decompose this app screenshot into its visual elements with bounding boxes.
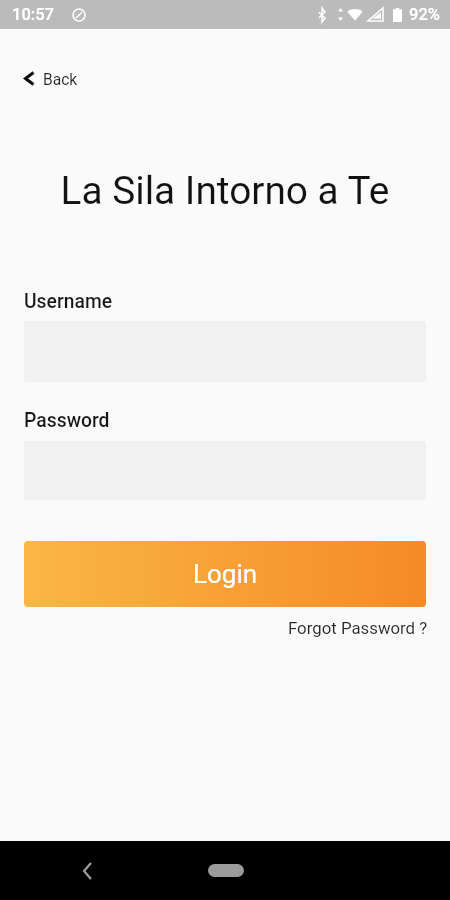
button[interactable]: Home — [201, 857, 251, 884]
staticText: Back — [43, 71, 78, 89]
staticText: Password — [24, 409, 110, 432]
button[interactable]: Forgot Password ? — [282, 612, 434, 644]
staticText: Login — [193, 559, 258, 589]
staticText: Username — [24, 290, 113, 313]
staticText: La Sila Intorno a Te — [0, 168, 450, 213]
staticText: 92% — [409, 5, 440, 24]
button[interactable]: Login — [24, 541, 426, 607]
button[interactable]: Back — [0, 63, 92, 93]
staticText: 10:57 — [12, 5, 54, 24]
staticText: Forgot Password ? — [288, 618, 428, 638]
button[interactable]: Back — [76, 855, 99, 887]
